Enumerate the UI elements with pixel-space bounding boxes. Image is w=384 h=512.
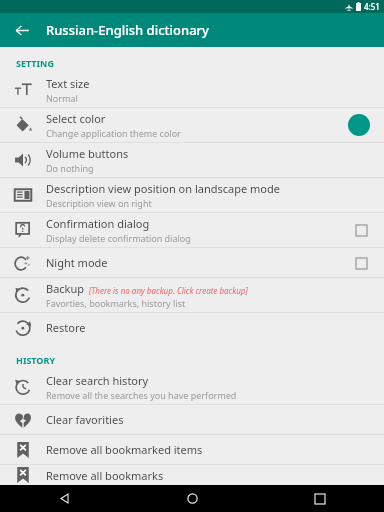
button[interactable]: Select color [0, 108, 384, 142]
staticText: Description view position on landscape m… [46, 181, 280, 196]
staticText: Description view on right [46, 197, 152, 209]
staticText: HISTORY [16, 354, 56, 366]
staticText: Normal [46, 92, 78, 104]
staticText: 4:51 [364, 1, 380, 12]
button[interactable]: Remove all bookmarks [0, 465, 384, 485]
staticText: Display delete confirmation dialog [46, 232, 191, 244]
button[interactable]: Toggle [352, 254, 370, 272]
staticText: Confirmation dialog [46, 216, 150, 231]
staticText: SETTING [16, 57, 54, 69]
staticText: Restore [46, 320, 86, 335]
staticText: Volume buttons [46, 146, 129, 161]
button[interactable]: Confirmation dialog [0, 213, 384, 247]
button[interactable]: Back [0, 485, 128, 512]
staticText: Backup [46, 281, 85, 296]
button[interactable]: Restore [0, 313, 384, 342]
staticText: Remove all the searches you have perform… [46, 389, 237, 401]
staticText: Select color [46, 111, 106, 126]
staticText: Russian-English dictionary [46, 21, 209, 39]
button[interactable]: Remove all bookmarked items [0, 435, 384, 464]
staticText: Remove all bookmarked items [46, 442, 203, 457]
staticText: Clear favorities [46, 412, 124, 427]
staticText: Favorties, bookmarks, history list [46, 297, 186, 309]
button[interactable]: Clear favorities [0, 405, 384, 434]
staticText: Do nothing [46, 162, 94, 174]
button[interactable]: Home [128, 485, 256, 512]
button[interactable]: Description view position on landscape m… [0, 178, 384, 212]
staticText: Remove all bookmarks [46, 468, 164, 483]
button[interactable]: Toggle [352, 221, 370, 239]
staticText: Clear search history [46, 373, 149, 388]
button[interactable]: Volume buttons [0, 143, 384, 177]
button[interactable]: Clear search history [0, 370, 384, 404]
button[interactable]: Night mode [0, 248, 384, 277]
button[interactable]: Back [8, 16, 36, 44]
button[interactable]: Text size [0, 73, 384, 107]
button[interactable]: Recent apps [256, 485, 384, 512]
staticText: Night mode [46, 255, 108, 270]
staticText: Change application theme color [46, 127, 181, 139]
button[interactable]: Backup [0, 278, 384, 312]
staticText: [There is no any backup. Click create ba… [89, 285, 248, 296]
staticText: Text size [46, 76, 90, 91]
